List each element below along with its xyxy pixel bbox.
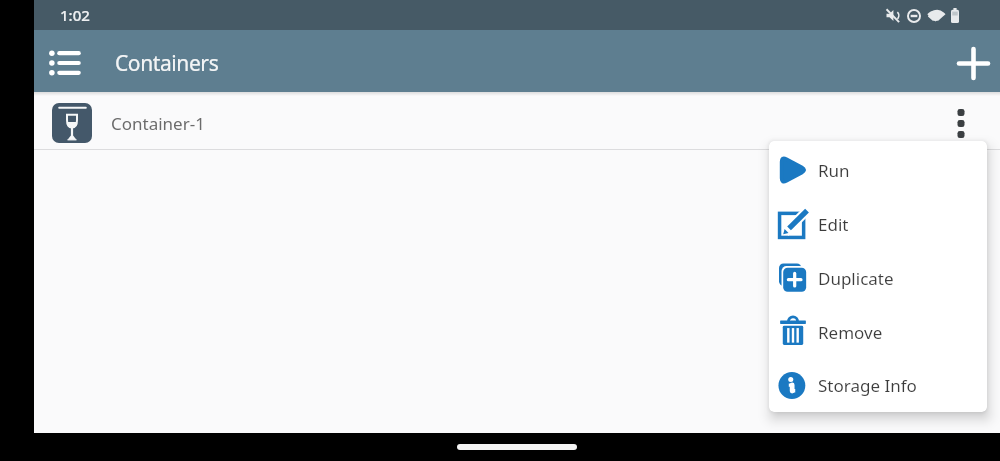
button[interactable]	[42, 40, 88, 86]
button[interactable]: Run	[769, 143, 987, 197]
staticText: 1:02	[60, 5, 90, 25]
button[interactable]	[939, 101, 983, 145]
button[interactable]: Remove	[769, 305, 987, 359]
button[interactable]: Duplicate	[769, 251, 987, 305]
button[interactable]: Edit	[769, 197, 987, 251]
staticText: Remove	[818, 321, 883, 344]
staticText: Containers	[115, 49, 219, 78]
button[interactable]	[950, 40, 996, 86]
button[interactable]: Storage Info	[769, 359, 987, 412]
staticText: Storage Info	[818, 374, 917, 397]
button[interactable]: Container-1	[34, 92, 1000, 149]
staticText: Duplicate	[818, 267, 894, 290]
staticText: Run	[818, 159, 850, 182]
staticText: Edit	[818, 213, 849, 236]
staticText: Container-1	[111, 112, 205, 135]
